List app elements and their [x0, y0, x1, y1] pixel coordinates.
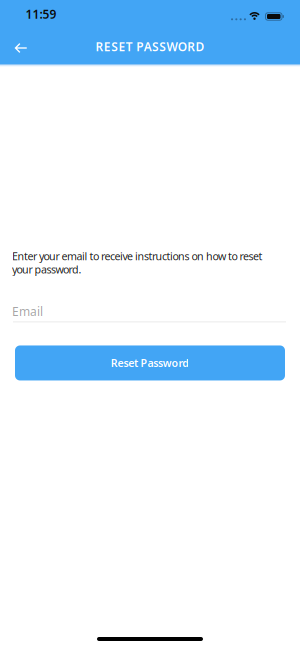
- staticText: RESET PASSWORD: [96, 38, 204, 54]
- staticText: 11:59: [25, 6, 56, 22]
- button[interactable]: Back: [6, 33, 36, 63]
- staticText: Reset Password: [111, 356, 189, 370]
- staticText: your password.: [12, 262, 81, 276]
- button[interactable]: Reset Password: [15, 345, 285, 380]
- staticText: Email: [12, 303, 43, 319]
- button[interactable]: Email: [0, 303, 300, 322]
- staticText: Enter your email to receive instructions…: [12, 249, 262, 263]
